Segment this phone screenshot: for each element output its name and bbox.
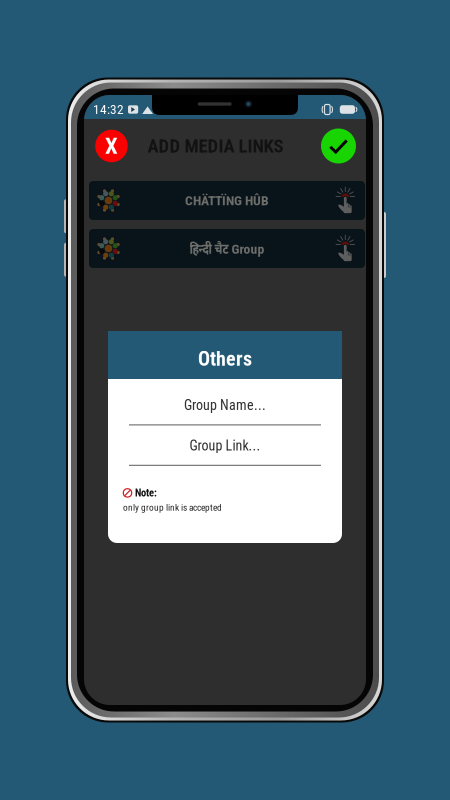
- button[interactable]: Group Name...: [129, 397, 321, 425]
- staticText: Others: [198, 347, 252, 371]
- staticText: 14:32: [93, 102, 124, 117]
- staticText: only group link is accepted: [123, 502, 222, 513]
- button[interactable]: Cancel: [89, 123, 133, 169]
- staticText: Group Link...: [189, 437, 260, 454]
- staticText: X: [105, 133, 118, 159]
- staticText: ADD MEDIA LINKS: [147, 135, 283, 157]
- button[interactable]: हिन्दी चैट Group: [89, 229, 365, 268]
- button[interactable]: Group Link...: [129, 437, 321, 466]
- staticText: हिन्दी चैट Group: [189, 239, 264, 258]
- button[interactable]: Save: [316, 123, 360, 169]
- staticText: Note:: [135, 487, 157, 499]
- staticText: Group Name...: [184, 397, 266, 413]
- button[interactable]: CHÄTTÏNG HÛB: [89, 181, 365, 220]
- staticText: CHÄTTÏNG HÛB: [185, 192, 269, 208]
